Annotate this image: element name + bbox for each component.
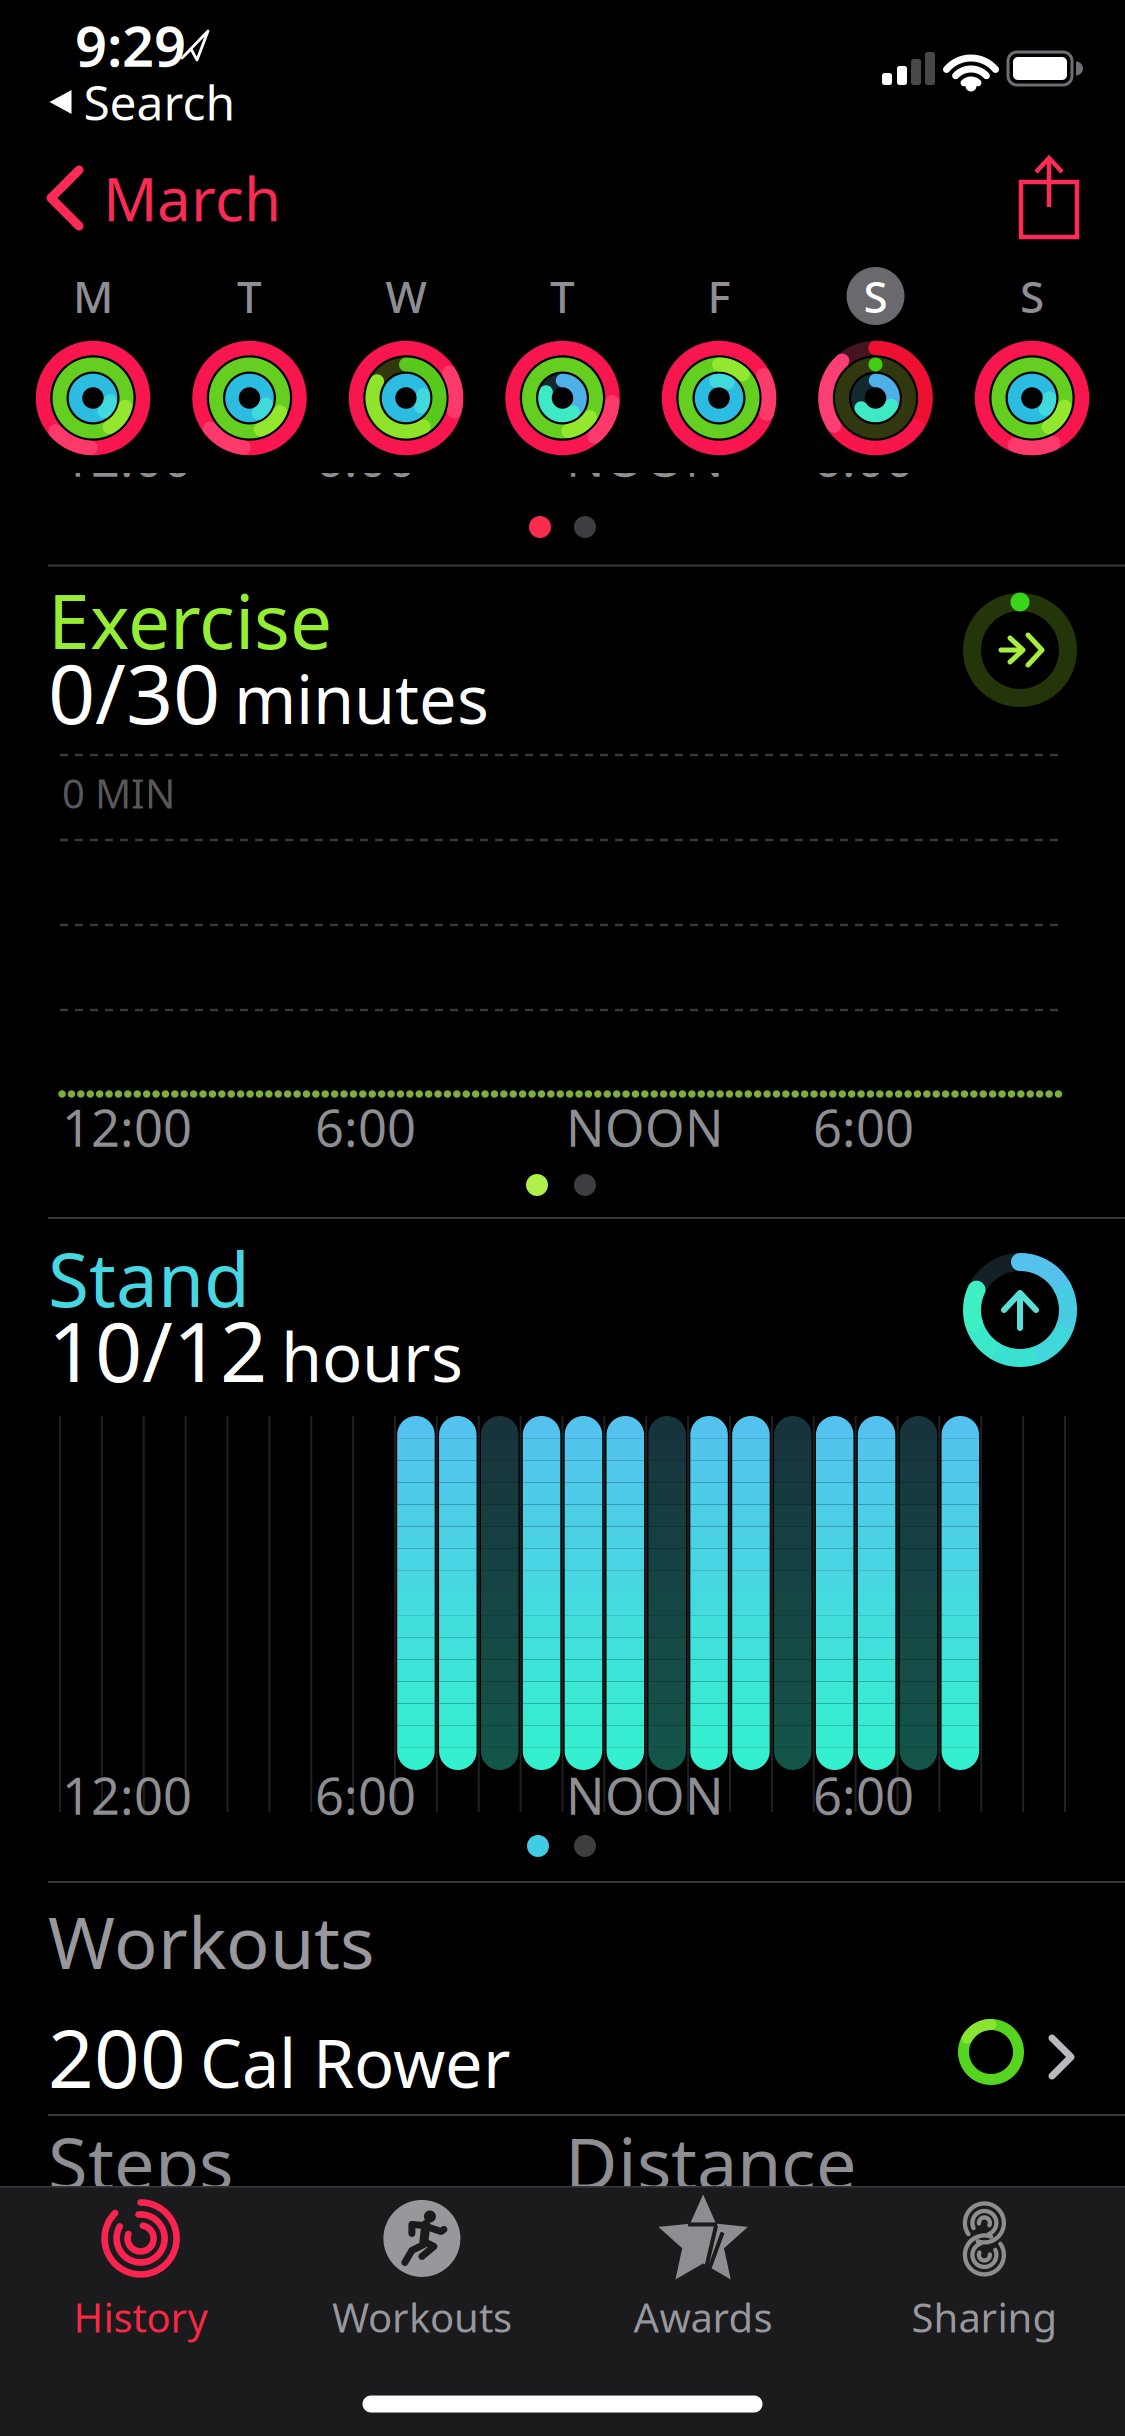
staticText: Steps [48,2114,233,2210]
button[interactable]: Workouts [282,2187,562,2353]
staticText: S [863,267,887,325]
staticText: M [73,267,113,325]
button[interactable]: Share [1019,157,1079,239]
staticText: 12:00 [62,1761,192,1829]
staticText: Exercise [48,570,332,670]
staticText: 10/12 [48,1295,267,1405]
button[interactable]: Back to March [17,158,347,238]
staticText: F [707,267,730,325]
button[interactable]: History [1,2187,281,2353]
staticText: hours [281,1312,463,1400]
staticText: 6:00 [813,1093,914,1161]
button[interactable]: F activity rings [644,262,794,462]
staticText: Sharing [911,2290,1057,2343]
staticText: Stand [48,1228,250,1328]
staticText: NOON [566,1093,724,1161]
button[interactable]: T activity rings [174,262,324,462]
staticText: S [1020,267,1044,325]
staticText: 0/30 [48,637,220,747]
staticText: 6:00 [315,423,416,491]
staticText: 12:00 [62,423,192,491]
staticText: March [103,158,281,238]
staticText: Cal Rower [200,2018,511,2106]
button[interactable]: Search [16,70,316,134]
button[interactable]: Awards [563,2187,843,2353]
staticText: Awards [634,2290,773,2343]
button[interactable]: M activity rings [18,262,168,462]
staticText: Workouts [332,2290,512,2343]
staticText: 6:00 [315,1093,416,1161]
staticText: History [74,2290,208,2343]
staticText: 200 [48,2004,186,2110]
staticText: minutes [234,654,489,742]
staticText: Workouts [48,1893,374,1989]
button[interactable]: S activity rings [957,262,1107,462]
staticText: 9:29 [75,8,186,82]
staticText: 12:00 [62,1093,192,1161]
staticText: W [385,267,426,325]
button[interactable]: T activity rings [487,262,637,462]
staticText: Distance [565,2114,857,2210]
staticText: NOON [566,423,724,491]
button[interactable]: W activity rings [331,262,481,462]
staticText: NOON [566,1761,724,1829]
staticText: 6:00 [813,423,914,491]
button[interactable]: 200 [48,2004,1125,2110]
staticText: 6:00 [813,1761,914,1829]
staticText: 0 MIN [62,766,175,819]
button[interactable]: Sharing [844,2187,1124,2353]
button[interactable]: S activity rings [800,262,950,462]
staticText: Search [83,70,235,134]
staticText: 6:00 [315,1761,416,1829]
staticText: T [550,267,575,325]
staticText: T [237,267,262,325]
